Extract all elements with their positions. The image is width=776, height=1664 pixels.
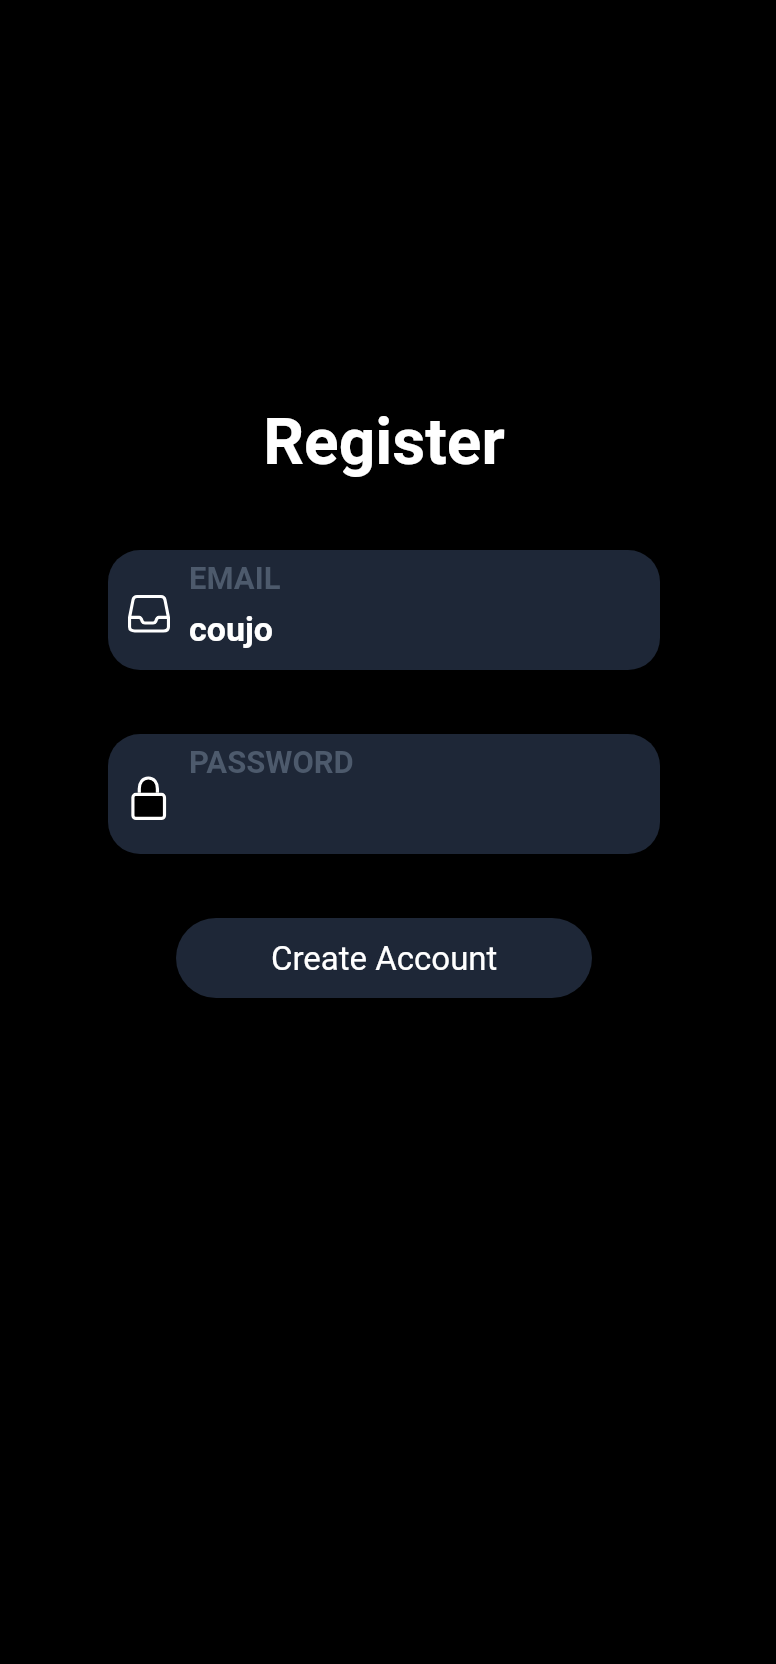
button[interactable]: PASSWORD: [108, 734, 660, 854]
staticText: coujo: [189, 609, 274, 649]
button[interactable]: EMAIL: [108, 550, 660, 670]
staticText: Create Account: [271, 939, 498, 978]
other: Password field: [126, 775, 172, 821]
staticText: EMAIL: [189, 560, 281, 596]
staticText: Register: [0, 405, 768, 480]
staticText: PASSWORD: [189, 744, 354, 780]
button[interactable]: Create Account: [176, 918, 592, 998]
other: Email inbox: [126, 591, 172, 637]
